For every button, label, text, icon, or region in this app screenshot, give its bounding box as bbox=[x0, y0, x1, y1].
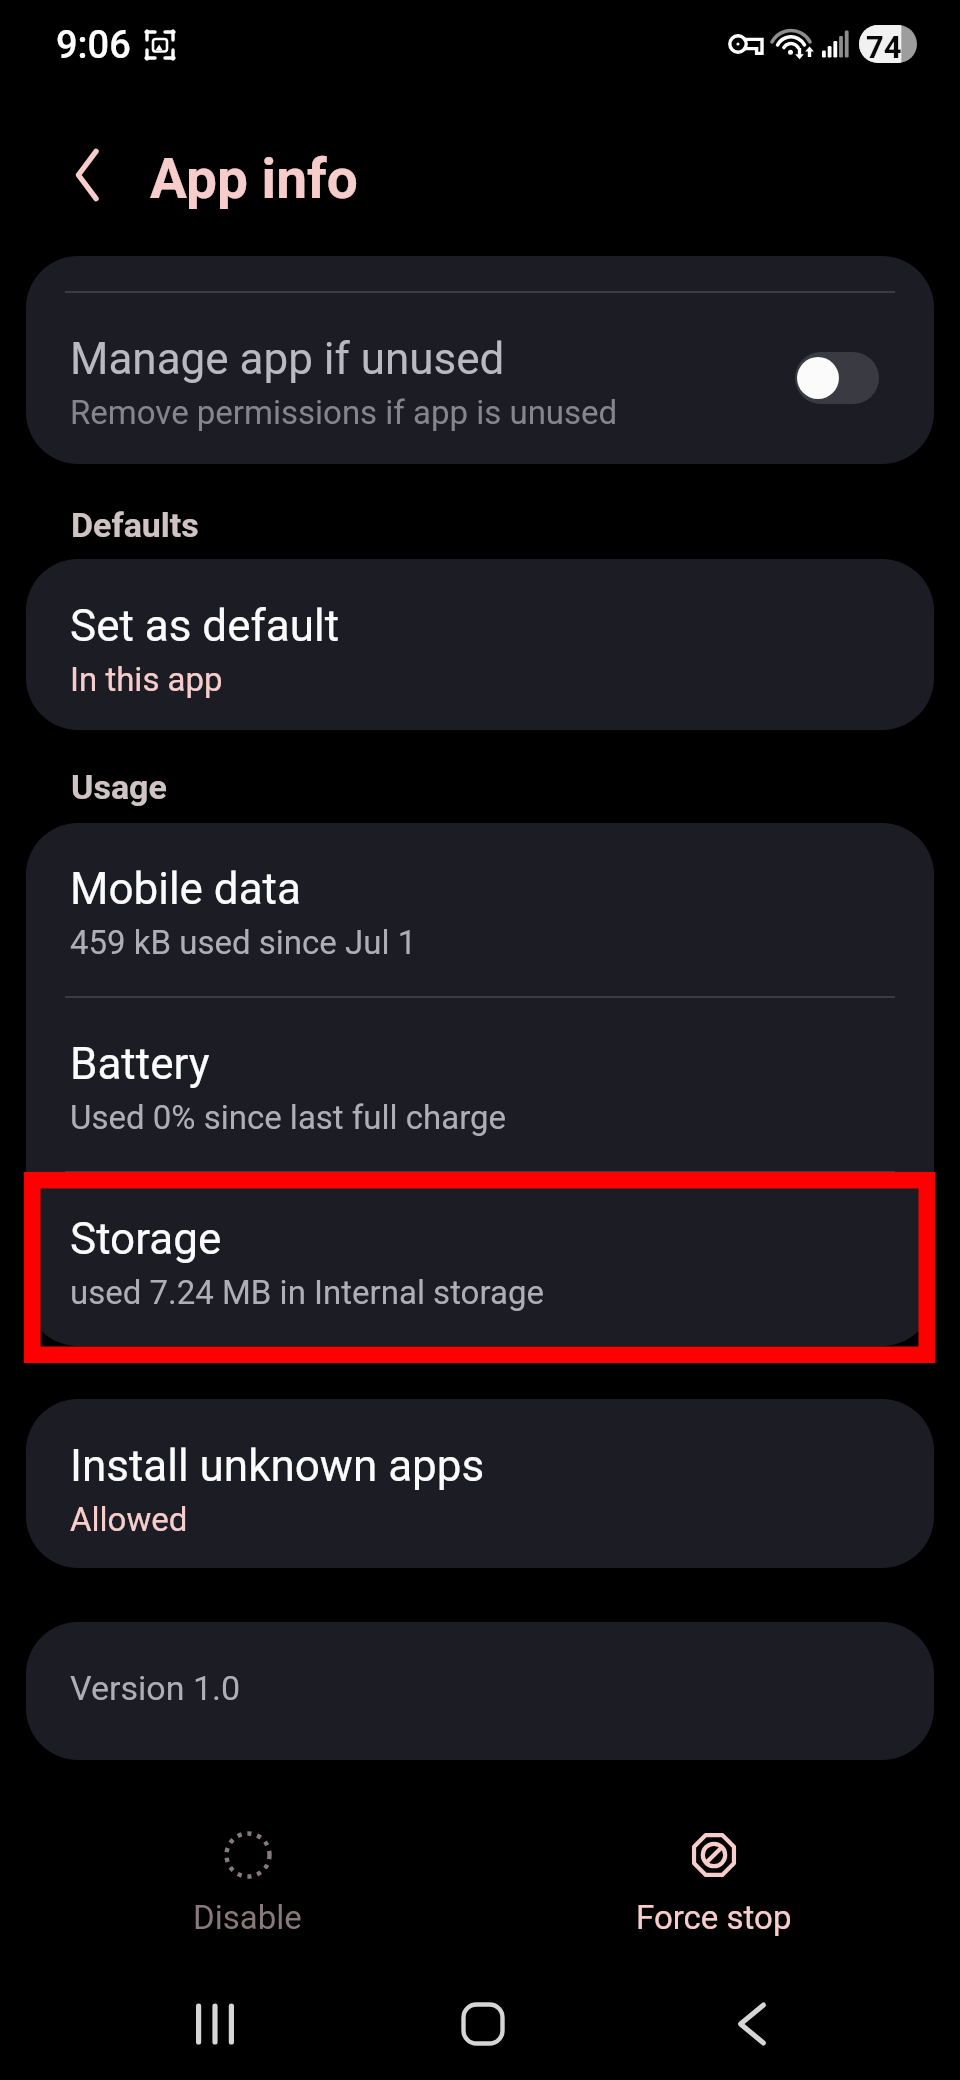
staticText: Version 1.0 bbox=[70, 1668, 241, 1708]
staticText: Disable bbox=[193, 1898, 302, 1937]
button[interactable]: Back bbox=[672, 1974, 832, 2074]
staticText: Defaults bbox=[71, 505, 199, 545]
staticText: In this app bbox=[70, 660, 223, 699]
button[interactable]: Usage bbox=[26, 823, 934, 1346]
button[interactable]: Navigate up bbox=[45, 132, 131, 218]
staticText: Set as default bbox=[70, 600, 340, 652]
staticText: Install unknown apps bbox=[70, 1440, 485, 1492]
button[interactable]: Set as default bbox=[26, 559, 934, 730]
staticText: Allowed bbox=[70, 1500, 188, 1539]
staticText: 74 bbox=[866, 29, 902, 65]
staticText: used 7.24 MB in Internal storage bbox=[70, 1273, 544, 1312]
staticText: Storage bbox=[70, 1213, 222, 1265]
staticText: 9:06 bbox=[56, 23, 131, 68]
button[interactable]: Home bbox=[403, 1974, 563, 2074]
staticText: Battery bbox=[70, 1038, 210, 1090]
staticText: Remove permissions if app is unused bbox=[70, 393, 618, 432]
button[interactable]: Disable bbox=[137, 1825, 357, 1955]
button[interactable]: Toggle manage app if unused bbox=[795, 352, 879, 404]
button[interactable]: Version 1.0 bbox=[26, 1622, 934, 1760]
staticText: Usage bbox=[71, 767, 167, 807]
staticText: 459 kB used since Jul 1 bbox=[70, 923, 417, 962]
staticText: App info bbox=[150, 147, 358, 211]
button[interactable]: Recent apps bbox=[135, 1974, 295, 2074]
staticText: Manage app if unused bbox=[70, 333, 505, 385]
button[interactable]: Manage app if unused bbox=[26, 256, 934, 464]
staticText: Mobile data bbox=[70, 863, 301, 915]
button[interactable]: Install unknown apps bbox=[26, 1399, 934, 1568]
staticText: Used 0% since last full charge bbox=[70, 1098, 507, 1137]
button[interactable]: Force stop bbox=[604, 1825, 824, 1955]
staticText: Force stop bbox=[636, 1898, 792, 1937]
